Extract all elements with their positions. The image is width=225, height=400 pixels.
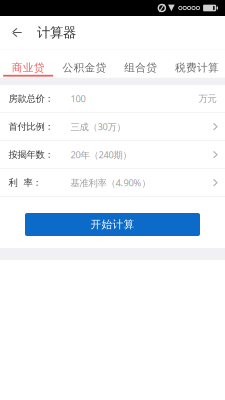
button[interactable]: 按揭年数： — [0, 141, 225, 169]
staticText: 首付比例： — [8, 121, 53, 132]
staticText: 按揭年数： — [8, 149, 53, 160]
button[interactable]: 公积金贷 — [56, 50, 112, 78]
staticText: 100 — [70, 92, 85, 105]
staticText: 房款总价： — [8, 93, 53, 104]
button[interactable]: 首付比例： — [0, 113, 225, 141]
staticText: 税费计算 — [175, 61, 219, 74]
staticText: 开始计算 — [90, 218, 134, 231]
button[interactable]: 房款总价： — [0, 85, 225, 113]
staticText: 利 率： — [8, 177, 41, 188]
staticText: 万元 — [198, 93, 216, 104]
button[interactable]: Back — [0, 16, 33, 49]
button[interactable]: 税费计算 — [169, 50, 225, 78]
staticText: 20年（240期） — [70, 148, 131, 161]
button[interactable]: 商业贷 — [0, 50, 56, 78]
staticText: 基准利率（4.90%） — [70, 176, 150, 189]
staticText: 组合贷 — [124, 61, 157, 74]
staticText: 公积金贷 — [62, 61, 106, 74]
button[interactable]: 组合贷 — [112, 50, 169, 78]
button[interactable]: 开始计算 — [25, 213, 200, 236]
staticText: 商业贷 — [12, 61, 45, 74]
staticText: 三成（30万） — [70, 120, 125, 133]
button[interactable]: 利 率： — [0, 169, 225, 197]
staticText: 计算器 — [37, 24, 76, 41]
